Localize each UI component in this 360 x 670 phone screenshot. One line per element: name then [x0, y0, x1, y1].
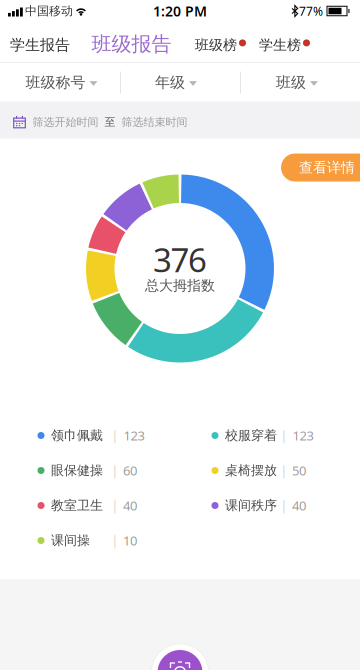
staticText: 学生榜 — [259, 36, 301, 54]
button[interactable]: 年级 — [155, 73, 197, 92]
staticText: | — [111, 497, 118, 513]
button[interactable]: 学生榜 — [259, 36, 310, 54]
staticText: 总大拇指数 — [145, 277, 215, 294]
staticText: 桌椅摆放 — [225, 462, 277, 478]
staticText: 1:20 PM — [153, 2, 207, 20]
staticText: 123 — [292, 427, 313, 444]
staticText: 376 — [153, 238, 207, 281]
staticText: | — [111, 462, 118, 478]
staticText: 学生报告 — [10, 36, 70, 54]
staticText: | — [280, 427, 287, 443]
staticText: 班级 — [276, 73, 306, 92]
staticText: 40 — [123, 497, 137, 514]
button[interactable]: 班级报告 — [91, 32, 171, 56]
staticText: 课间操 — [51, 532, 90, 548]
staticText: 年级 — [155, 73, 185, 92]
staticText: | — [280, 497, 287, 513]
staticText: 眼保健操 — [51, 462, 103, 478]
staticText: 50 — [292, 462, 306, 479]
button[interactable]: 学生报告 — [10, 36, 70, 54]
staticText: 中国移动 — [25, 4, 73, 18]
staticText: 校服穿着 — [225, 427, 277, 443]
button[interactable]: 筛选开始时间 — [32, 115, 98, 129]
staticText: | — [111, 427, 118, 443]
staticText: 筛选结束时间 — [121, 115, 187, 129]
staticText: 123 — [123, 427, 144, 444]
button[interactable]: 筛选结束时间 — [121, 115, 187, 129]
staticText: 教室卫生 — [51, 497, 103, 513]
staticText: 领巾佩戴 — [51, 427, 103, 443]
staticText: 10 — [123, 532, 137, 549]
button[interactable]: 班级称号 — [25, 73, 97, 92]
button[interactable]: 班级榜 — [195, 36, 246, 54]
staticText: 课间秩序 — [225, 497, 277, 513]
staticText: 查看详情 — [299, 159, 355, 176]
staticText: 40 — [292, 497, 306, 514]
staticText: 至 — [104, 115, 115, 129]
staticText: 77% — [299, 3, 323, 19]
staticText: 班级报告 — [91, 32, 171, 56]
staticText: | — [111, 532, 118, 548]
staticText: 班级榜 — [195, 36, 237, 54]
staticText: 60 — [123, 462, 137, 479]
staticText: 筛选开始时间 — [32, 115, 98, 129]
button[interactable]: 班级 — [276, 73, 318, 92]
staticText: | — [280, 462, 287, 478]
button[interactable]: 拍照打卡 — [151, 643, 209, 670]
staticText: 班级称号 — [25, 73, 85, 92]
button[interactable]: 查看详情 — [281, 153, 360, 181]
